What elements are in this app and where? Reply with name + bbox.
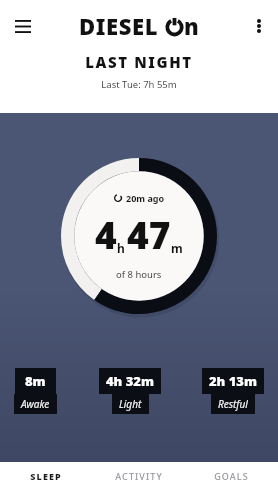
staticText: DIESEL [79, 11, 159, 41]
staticText: LAST NIGHT [0, 52, 278, 72]
staticText: Last Tue: 7h 55m [0, 78, 278, 91]
button[interactable]: Menu [6, 9, 40, 43]
staticText: SLEEP [30, 470, 62, 482]
staticText: 20m ago [126, 192, 165, 204]
staticText: 2h 13m [209, 372, 257, 390]
staticText: GOALS [214, 470, 249, 482]
staticText: n [184, 11, 199, 41]
button[interactable]: GOALS [185, 462, 278, 489]
staticText: of 8 hours [116, 268, 162, 281]
staticText: ACTIVITY [115, 470, 163, 482]
button[interactable]: ACTIVITY [92, 462, 185, 489]
button[interactable]: Sleep duration 4 hours 47 minutes [61, 158, 217, 314]
staticText: Awake [21, 397, 50, 411]
staticText: m [171, 240, 183, 256]
staticText: Light [119, 397, 142, 411]
button[interactable]: SLEEP [0, 462, 92, 489]
button[interactable]: 4h 32m [99, 368, 161, 414]
staticText: 8m [25, 372, 46, 390]
button[interactable]: More options [242, 9, 276, 43]
staticText: 4 [95, 209, 117, 259]
button[interactable]: 2h 13m [202, 368, 264, 414]
staticText: 47 [127, 209, 171, 259]
button[interactable]: 8m [14, 368, 57, 414]
staticText: Restful [218, 397, 248, 411]
staticText: h [117, 240, 125, 256]
staticText: 4h 32m [106, 372, 154, 390]
